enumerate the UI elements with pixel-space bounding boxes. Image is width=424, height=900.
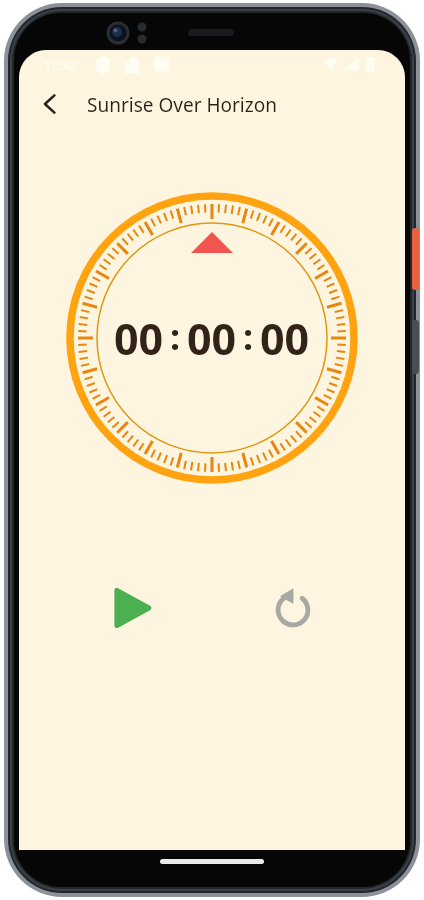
- staticText: Sunrise Over Horizon: [87, 92, 277, 118]
- button[interactable]: Back: [26, 80, 74, 128]
- staticText: 00: [260, 309, 310, 368]
- button[interactable]: Reset: [257, 572, 329, 644]
- staticText: :: [243, 312, 254, 361]
- staticText: 12:42: [44, 56, 78, 74]
- staticText: :: [170, 312, 181, 361]
- staticText: 00: [114, 309, 164, 368]
- staticText: 00: [187, 309, 237, 368]
- button[interactable]: Start: [96, 572, 168, 644]
